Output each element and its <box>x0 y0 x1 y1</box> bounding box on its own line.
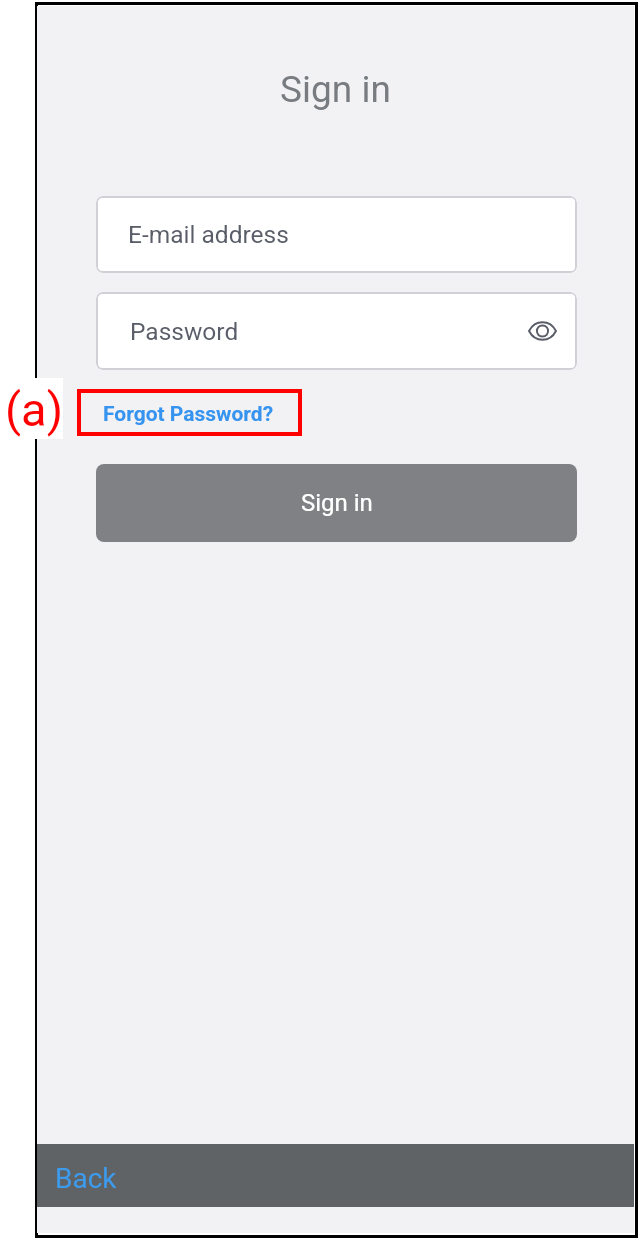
staticText: Sign in <box>37 68 634 111</box>
staticText: Forgot Password? <box>103 402 274 427</box>
staticText: Sign in <box>301 489 373 517</box>
staticText: (a) <box>5 382 64 437</box>
button[interactable]: Sign in <box>96 464 577 542</box>
staticText: Back <box>55 1162 117 1195</box>
staticText: Password <box>130 317 239 346</box>
button[interactable]: Back <box>37 1144 634 1207</box>
button[interactable]: E-mail address <box>96 196 577 273</box>
button[interactable]: Show password <box>522 311 562 351</box>
staticText: E-mail address <box>128 220 289 249</box>
button[interactable]: Password <box>96 292 577 370</box>
button[interactable]: Forgot Password? <box>96 394 274 434</box>
